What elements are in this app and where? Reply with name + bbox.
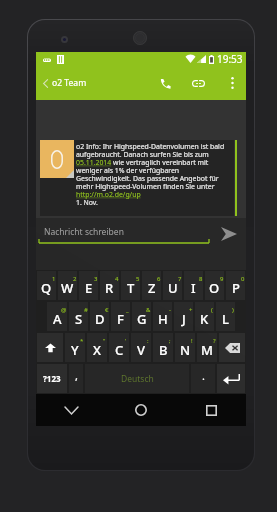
button[interactable]: D [90,302,109,331]
staticText: P [232,279,240,297]
staticText: 8 [199,275,203,283]
staticText: : [147,337,149,345]
staticText: _ [126,306,129,314]
button[interactable]: O [205,271,224,300]
staticText: , [75,368,78,383]
button[interactable]: C [109,333,129,362]
button[interactable]: E [79,271,98,300]
staticText: O [209,279,220,297]
staticText: 19:53 [217,52,243,66]
button[interactable]: Enter [217,364,245,393]
staticText: Z [148,279,156,297]
staticText: ! [191,337,193,345]
button[interactable]: V [131,333,151,362]
staticText: E [85,279,93,297]
button[interactable]: Recent apps [176,394,246,426]
button[interactable]: Send [212,218,246,250]
staticText: H [158,310,168,328]
button[interactable]: I [184,271,203,300]
staticText: 2 [73,275,77,283]
button[interactable]: Home [106,394,176,426]
staticText: 9 [220,275,224,283]
staticText: ; [169,337,171,345]
button[interactable]: N [175,333,195,362]
button[interactable]: Call [150,66,180,100]
button[interactable]: F [111,302,130,331]
staticText: A [53,310,62,328]
staticText: ( [211,306,213,314]
staticText: 0 [241,275,245,283]
button[interactable]: B [153,333,173,362]
staticText: L [222,310,229,328]
button[interactable]: Back [36,394,106,426]
button[interactable]: T [121,271,140,300]
staticText: I [191,279,196,297]
staticText: " [103,337,106,345]
staticText: o2 Info: Ihr Highspeed-Datenvolumen ist … [76,142,234,207]
staticText: U [168,279,178,297]
button[interactable]: Comma [69,364,83,393]
staticText: R [105,279,114,297]
staticText: ) [232,306,234,314]
staticText: € [105,306,109,314]
staticText: B [159,341,168,359]
button[interactable]: Shift [37,333,63,362]
staticText: 6 [157,275,161,283]
staticText: X [93,341,101,359]
staticText: * [80,337,84,345]
staticText: # [84,306,88,314]
staticText: J [182,310,186,328]
staticText: M [201,341,213,359]
staticText: + [189,306,193,314]
button[interactable]: Period [191,364,215,393]
button[interactable]: G [132,302,151,331]
staticText: N [180,341,191,359]
staticText: K [200,310,209,328]
staticText: . [202,368,205,383]
button[interactable]: Z [142,271,161,300]
staticText: 5 [136,275,140,283]
staticText: Y [71,341,79,359]
button[interactable]: S [69,302,88,331]
staticText: 3 [94,275,98,283]
staticText: S [75,310,83,328]
staticText: G [137,310,147,328]
button[interactable]: Nachricht schreiben [38,218,210,250]
button[interactable]: More options [218,66,246,100]
staticText: ? [213,337,216,345]
staticText: F [117,310,124,328]
button[interactable]: W [58,271,77,300]
staticText: Nachricht schreiben [44,226,124,238]
staticText: Q [41,279,52,297]
button[interactable]: J [174,302,193,331]
staticText: 4 [115,275,119,283]
staticText: D [95,310,105,328]
button[interactable]: Navigate up [36,66,54,100]
staticText: @ [61,306,67,314]
staticText: Deutsch [121,373,154,385]
staticText: ' [125,337,127,345]
button[interactable]: M [197,333,217,362]
staticText: V [137,341,145,359]
button[interactable]: Backspace [219,333,245,362]
button[interactable]: Q [37,271,56,300]
button[interactable]: H [153,302,172,331]
button[interactable]: Deutsch [85,364,189,393]
button[interactable]: Y [65,333,85,362]
button[interactable]: A [47,302,67,331]
button[interactable]: L [216,302,235,331]
button[interactable]: ?123 [37,364,67,393]
button[interactable] [40,140,234,216]
staticText: C [115,341,124,359]
staticText: T [127,279,135,297]
button[interactable]: R [100,271,119,300]
button[interactable]: K [195,302,214,331]
button[interactable]: U [163,271,182,300]
staticText: - [169,306,171,314]
staticText: o2 Team [52,77,87,89]
staticText: 7 [178,275,182,283]
button[interactable]: Attach [183,66,213,100]
button[interactable]: P [226,271,245,300]
button[interactable]: X [87,333,107,362]
staticText: W [61,279,74,297]
